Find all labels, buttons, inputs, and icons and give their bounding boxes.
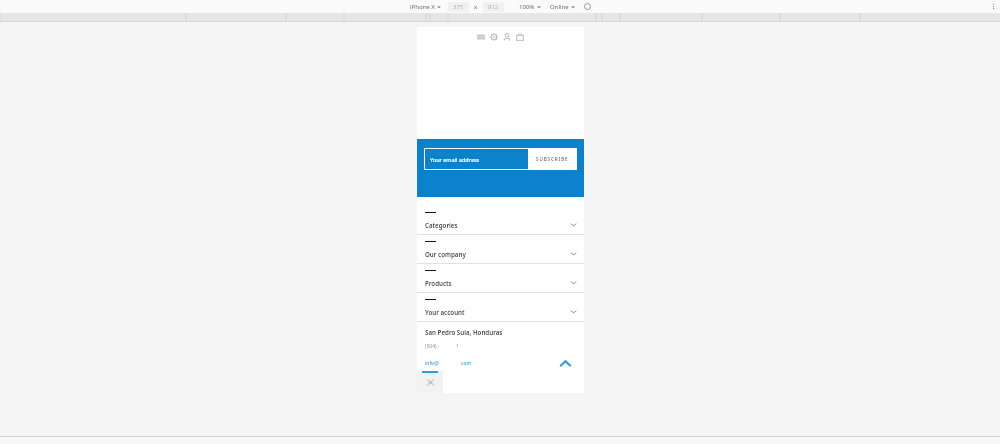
button[interactable]: Cart: [515, 32, 525, 42]
staticText: Categories: [425, 221, 571, 229]
staticText: Your account: [425, 308, 571, 316]
button[interactable]: iPhone X: [408, 3, 443, 11]
staticText: SUBSCRIBE: [536, 156, 569, 162]
button[interactable]: Scroll to top: [557, 355, 573, 371]
button[interactable]: Categories: [417, 206, 584, 235]
staticText: 812: [488, 3, 499, 11]
staticText: iPhone X: [410, 3, 435, 11]
staticText: Online: [550, 3, 569, 11]
button[interactable]: 100%: [517, 3, 543, 11]
button[interactable]: info@: [425, 360, 472, 367]
button[interactable]: Rotate: [582, 1, 593, 12]
staticText: 100%: [519, 3, 535, 11]
button[interactable]: More options: [993, 4, 994, 9]
button[interactable]: Your account: [417, 293, 584, 322]
staticText: com: [461, 360, 472, 367]
button[interactable]: Products: [417, 264, 584, 293]
button[interactable]: Our company: [417, 235, 584, 264]
button[interactable]: Account: [502, 32, 512, 42]
staticText: Products: [425, 279, 571, 287]
button[interactable]: Accessibility widget: [417, 371, 443, 393]
staticText: x: [474, 3, 478, 11]
staticText: (504) :: [425, 343, 440, 350]
staticText: 375: [453, 3, 464, 11]
button[interactable]: Menu: [476, 32, 486, 42]
button[interactable]: Settings: [489, 32, 499, 42]
staticText: San Pedro Sula, Honduras: [425, 328, 503, 336]
staticText: Your email address: [430, 156, 480, 163]
staticText: info@: [425, 360, 439, 367]
staticText: Our company: [425, 250, 571, 258]
staticText: 1: [456, 343, 459, 350]
button[interactable]: SUBSCRIBE: [528, 148, 577, 170]
button[interactable]: Online: [548, 3, 577, 11]
button[interactable]: Your email address: [424, 148, 528, 170]
